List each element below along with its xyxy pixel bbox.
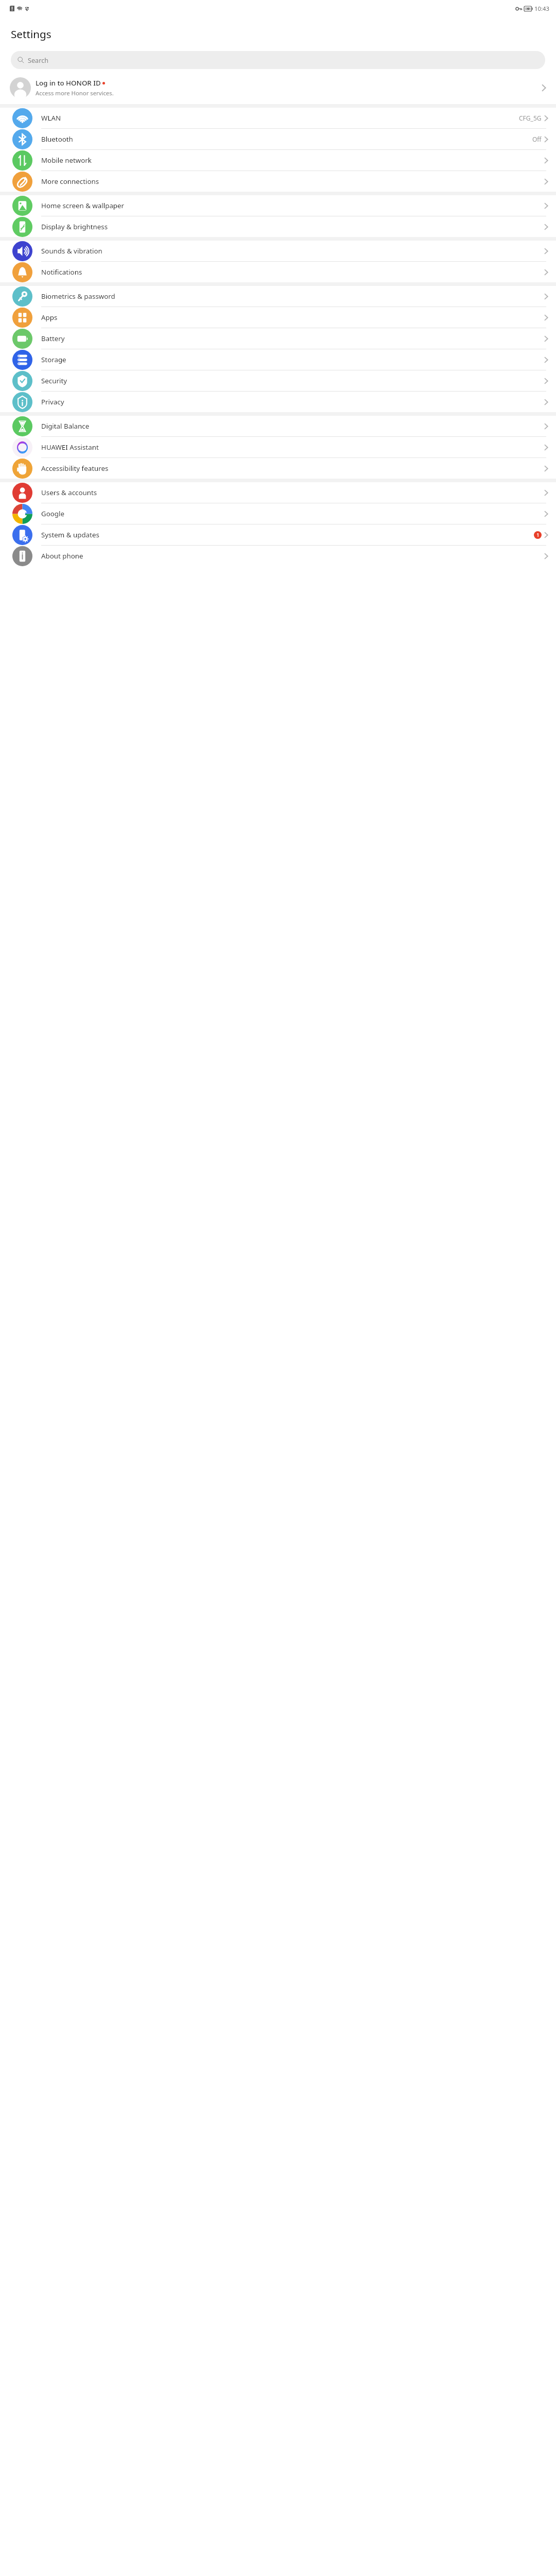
staticText: Off <box>532 135 542 143</box>
button[interactable]: Digital Balance <box>0 416 556 437</box>
button[interactable]: Home screen & wallpaper <box>0 195 556 216</box>
button[interactable]: Notifications <box>0 262 556 282</box>
button[interactable]: Users & accounts <box>0 482 556 503</box>
staticText: Notifications <box>41 267 544 277</box>
button[interactable]: Security <box>0 370 556 392</box>
staticText: Home screen & wallpaper <box>41 201 544 210</box>
staticText: About phone <box>41 551 544 561</box>
staticText: HUAWEI Assistant <box>41 443 544 452</box>
staticText: Access more Honor services. <box>36 89 114 97</box>
button[interactable]: Storage <box>0 349 556 370</box>
staticText: Biometrics & password <box>41 292 544 301</box>
staticText: Search <box>28 56 49 64</box>
button[interactable]: Bluetooth <box>0 129 556 150</box>
button[interactable]: Sounds & vibration <box>0 241 556 262</box>
staticText: System & updates <box>41 530 534 539</box>
staticText: 1 <box>536 532 540 538</box>
staticText: Sounds & vibration <box>41 246 544 256</box>
staticText: More connections <box>41 177 544 186</box>
button[interactable]: Privacy <box>0 392 556 412</box>
staticText: Apps <box>41 313 544 322</box>
staticText: Bluetooth <box>41 134 532 144</box>
staticText: Mobile network <box>41 156 544 165</box>
button[interactable]: Accessibility features <box>0 458 556 479</box>
staticText: Security <box>41 376 544 385</box>
staticText: 10:43 <box>534 5 549 12</box>
button[interactable]: Mobile network <box>0 150 556 171</box>
button[interactable]: Biometrics & password <box>0 286 556 307</box>
button[interactable]: Apps <box>0 307 556 328</box>
staticText: Privacy <box>41 397 544 406</box>
staticText: Accessibility features <box>41 464 544 473</box>
staticText: CFG_5G <box>519 114 542 122</box>
staticText: Settings <box>11 27 51 41</box>
button[interactable]: About phone <box>0 546 556 566</box>
button[interactable]: Search <box>11 51 545 69</box>
staticText: Battery <box>41 334 544 343</box>
button[interactable]: More connections <box>0 171 556 192</box>
button[interactable]: Battery <box>0 328 556 349</box>
staticText: Display & brightness <box>41 222 544 231</box>
staticText: WLAN <box>41 113 519 123</box>
staticText: Google <box>41 509 544 518</box>
staticText: Storage <box>41 355 544 364</box>
button[interactable]: Google <box>0 503 556 524</box>
staticText: Digital Balance <box>41 421 544 431</box>
staticText: Users & accounts <box>41 488 544 497</box>
button[interactable]: HUAWEI Assistant <box>0 437 556 458</box>
button[interactable]: WLAN <box>0 108 556 129</box>
staticText: Log in to HONOR ID <box>36 78 101 88</box>
button[interactable]: Display & brightness <box>0 216 556 237</box>
button[interactable]: System & updates <box>0 524 556 546</box>
button[interactable]: Log in to HONOR ID <box>0 75 556 100</box>
